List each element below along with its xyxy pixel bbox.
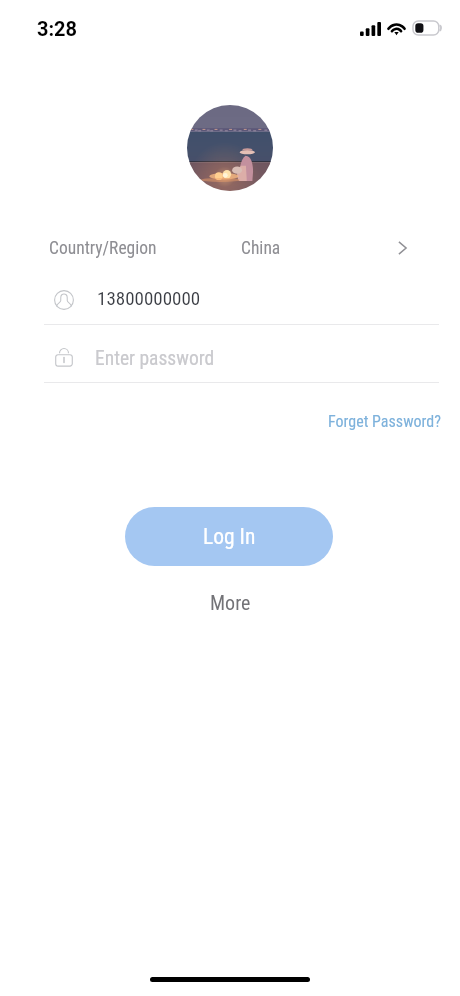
button[interactable]: Log In [125, 507, 333, 566]
button[interactable]: Forget Password? [318, 404, 451, 439]
button[interactable]: More [200, 583, 261, 622]
staticText: Forget Password? [328, 412, 441, 431]
button[interactable]: Country/Region [0, 226, 460, 270]
staticText: 13800000000 [97, 287, 201, 309]
staticText: 3:28 [37, 17, 78, 40]
staticText: Country/Region [49, 238, 157, 259]
button[interactable]: Profile photo [187, 105, 273, 191]
staticText: Log In [203, 524, 256, 549]
staticText: China [241, 238, 281, 259]
staticText: More [210, 591, 251, 614]
staticText: Enter password [95, 347, 215, 370]
